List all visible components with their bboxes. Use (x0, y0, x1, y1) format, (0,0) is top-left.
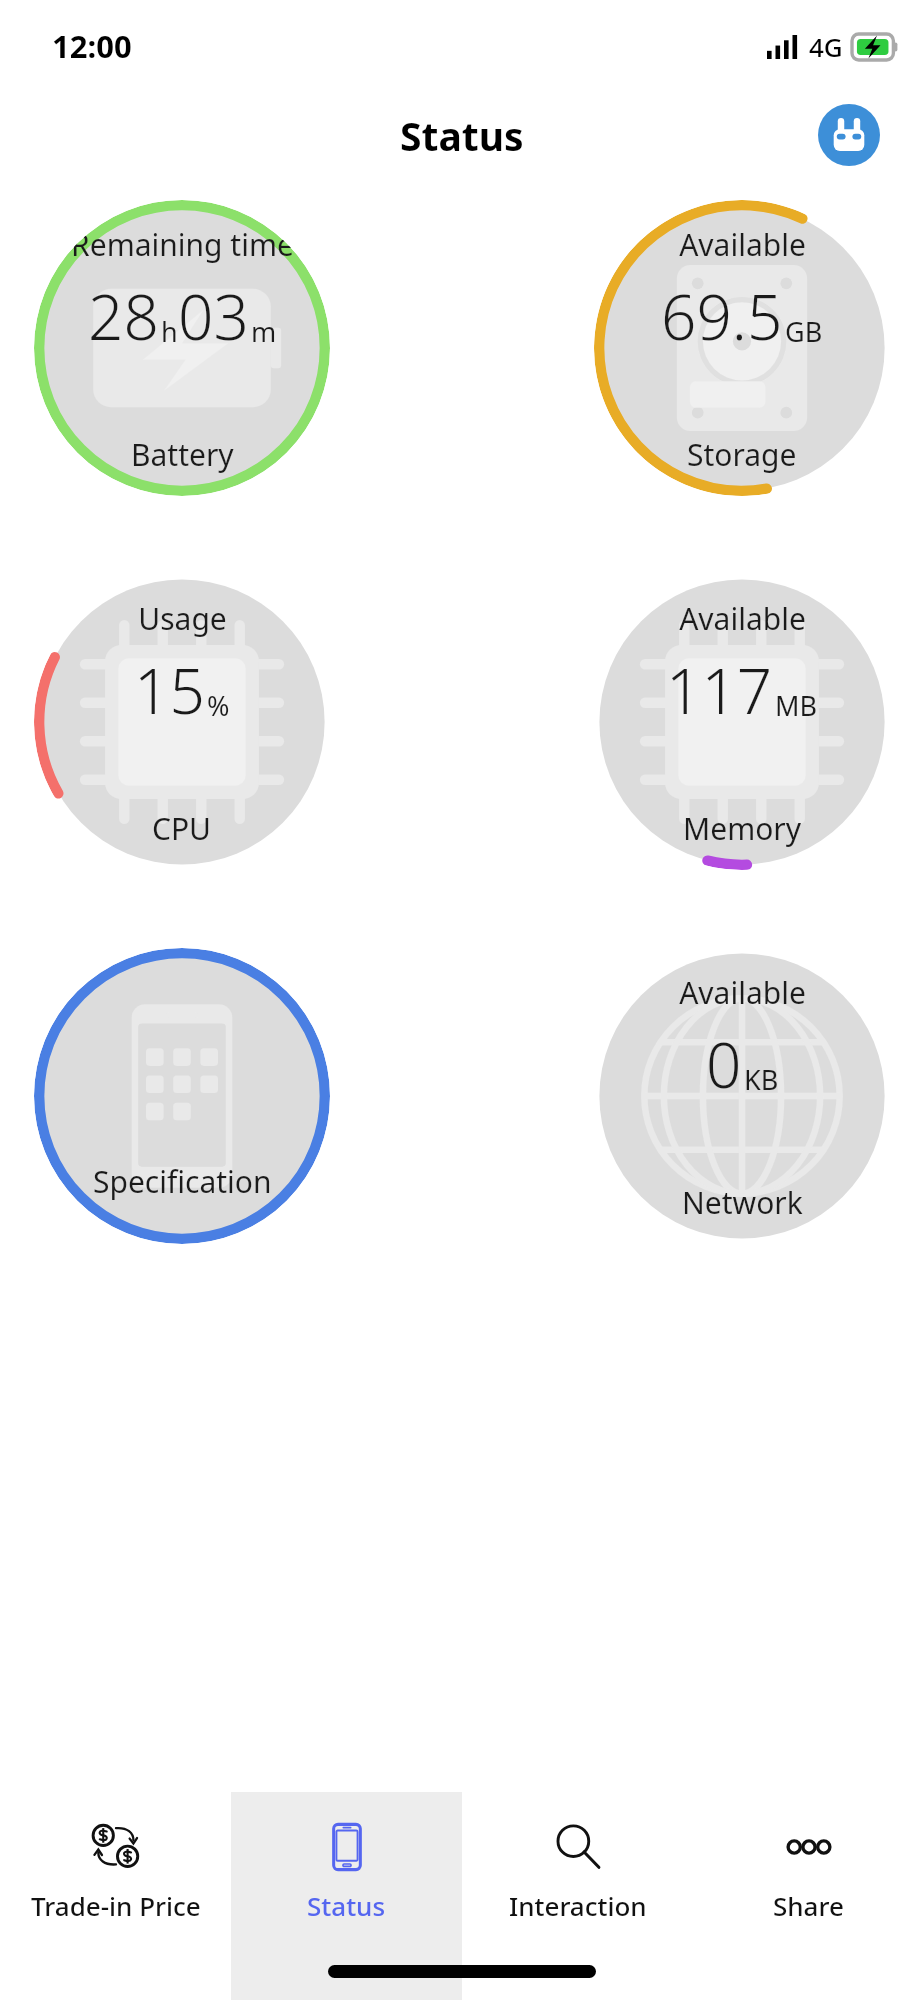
staticText: % (207, 687, 230, 724)
staticText: 15 (134, 648, 205, 732)
staticText: 0 (706, 1022, 742, 1106)
staticText: m (251, 313, 277, 350)
staticText: 28 (88, 274, 159, 358)
staticText: CPU (152, 808, 212, 849)
staticText: Usage (138, 598, 227, 639)
staticText: 4G (809, 29, 843, 64)
staticText: Battery (131, 434, 234, 475)
staticText: Remaining time (71, 224, 294, 265)
staticText: Available (679, 224, 806, 265)
button[interactable]: Antutu app (818, 104, 880, 166)
staticText: Available (679, 972, 806, 1013)
button[interactable]: Available (594, 574, 890, 870)
button[interactable]: Status (231, 1792, 462, 2000)
button[interactable]: Trade-in Price (0, 1792, 231, 2000)
staticText: Status (400, 109, 524, 162)
button[interactable]: Usage (34, 574, 330, 870)
button[interactable]: Specification (34, 948, 330, 1244)
staticText: Memory (683, 808, 802, 849)
staticText: 12:00 (52, 25, 132, 67)
staticText: 03 (178, 274, 249, 358)
button[interactable]: Share (693, 1792, 924, 2000)
staticText: 69.5 (661, 274, 783, 358)
staticText: Network (682, 1182, 803, 1223)
staticText: Interaction (509, 1888, 647, 1923)
staticText: Status (307, 1888, 386, 1923)
staticText: 117 (666, 648, 773, 732)
staticText: Trade-in Price (31, 1888, 201, 1923)
staticText: KB (744, 1061, 779, 1098)
staticText: Available (679, 598, 806, 639)
button[interactable]: Available (594, 948, 890, 1244)
button[interactable]: Interaction (462, 1792, 693, 2000)
staticText: Specification (93, 1161, 272, 1202)
staticText: h (161, 313, 178, 350)
staticText: MB (775, 687, 818, 724)
staticText: Storage (687, 434, 797, 475)
staticText: Share (773, 1888, 844, 1923)
button[interactable]: Remaining time (34, 200, 330, 496)
button[interactable]: Available (594, 200, 890, 496)
staticText: GB (785, 313, 823, 350)
